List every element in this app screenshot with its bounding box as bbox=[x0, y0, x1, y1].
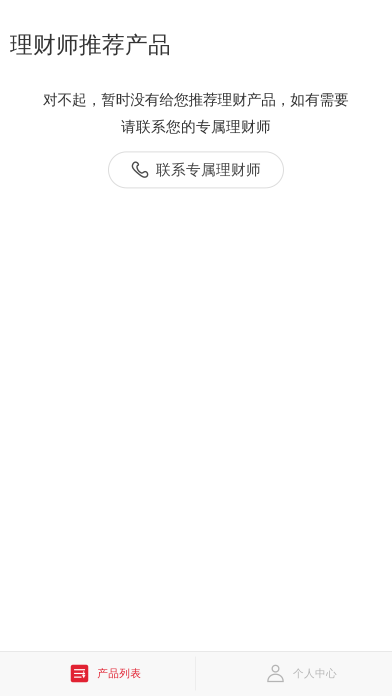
staticText: 对不起，暂时没有给您推荐理财产品，如有需要 bbox=[43, 91, 349, 109]
button[interactable]: 产品列表 bbox=[0, 651, 196, 696]
button[interactable]: 个人中心 bbox=[196, 651, 392, 696]
staticText: 个人中心 bbox=[293, 667, 337, 680]
staticText: 理财师推荐产品 bbox=[10, 31, 171, 59]
staticText: 产品列表 bbox=[97, 667, 141, 680]
staticText: 请联系您的专属理财师 bbox=[121, 118, 271, 136]
staticText: 联系专属理财师 bbox=[156, 161, 261, 179]
button[interactable]: 联系专属理财师 bbox=[108, 152, 283, 188]
